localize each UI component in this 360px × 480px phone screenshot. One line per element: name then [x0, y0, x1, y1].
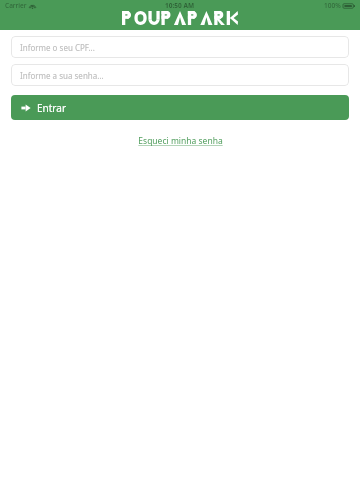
staticText: Esqueci minha senha	[138, 135, 223, 147]
button[interactable]: Informe o seu CPF...	[11, 36, 349, 58]
staticText: Informe a sua senha...	[20, 70, 104, 81]
staticText: 100%	[324, 1, 341, 10]
staticText: Informe o seu CPF...	[20, 42, 95, 53]
button[interactable]: Esqueci minha senha	[134, 133, 227, 149]
staticText: Entrar	[37, 101, 67, 115]
button[interactable]: Entrar	[11, 95, 349, 120]
staticText: 10:50 AM	[165, 1, 195, 10]
staticText: Carrier	[5, 1, 27, 10]
other: PoupaPark	[122, 11, 238, 25]
button[interactable]: Informe a sua senha...	[11, 64, 349, 86]
